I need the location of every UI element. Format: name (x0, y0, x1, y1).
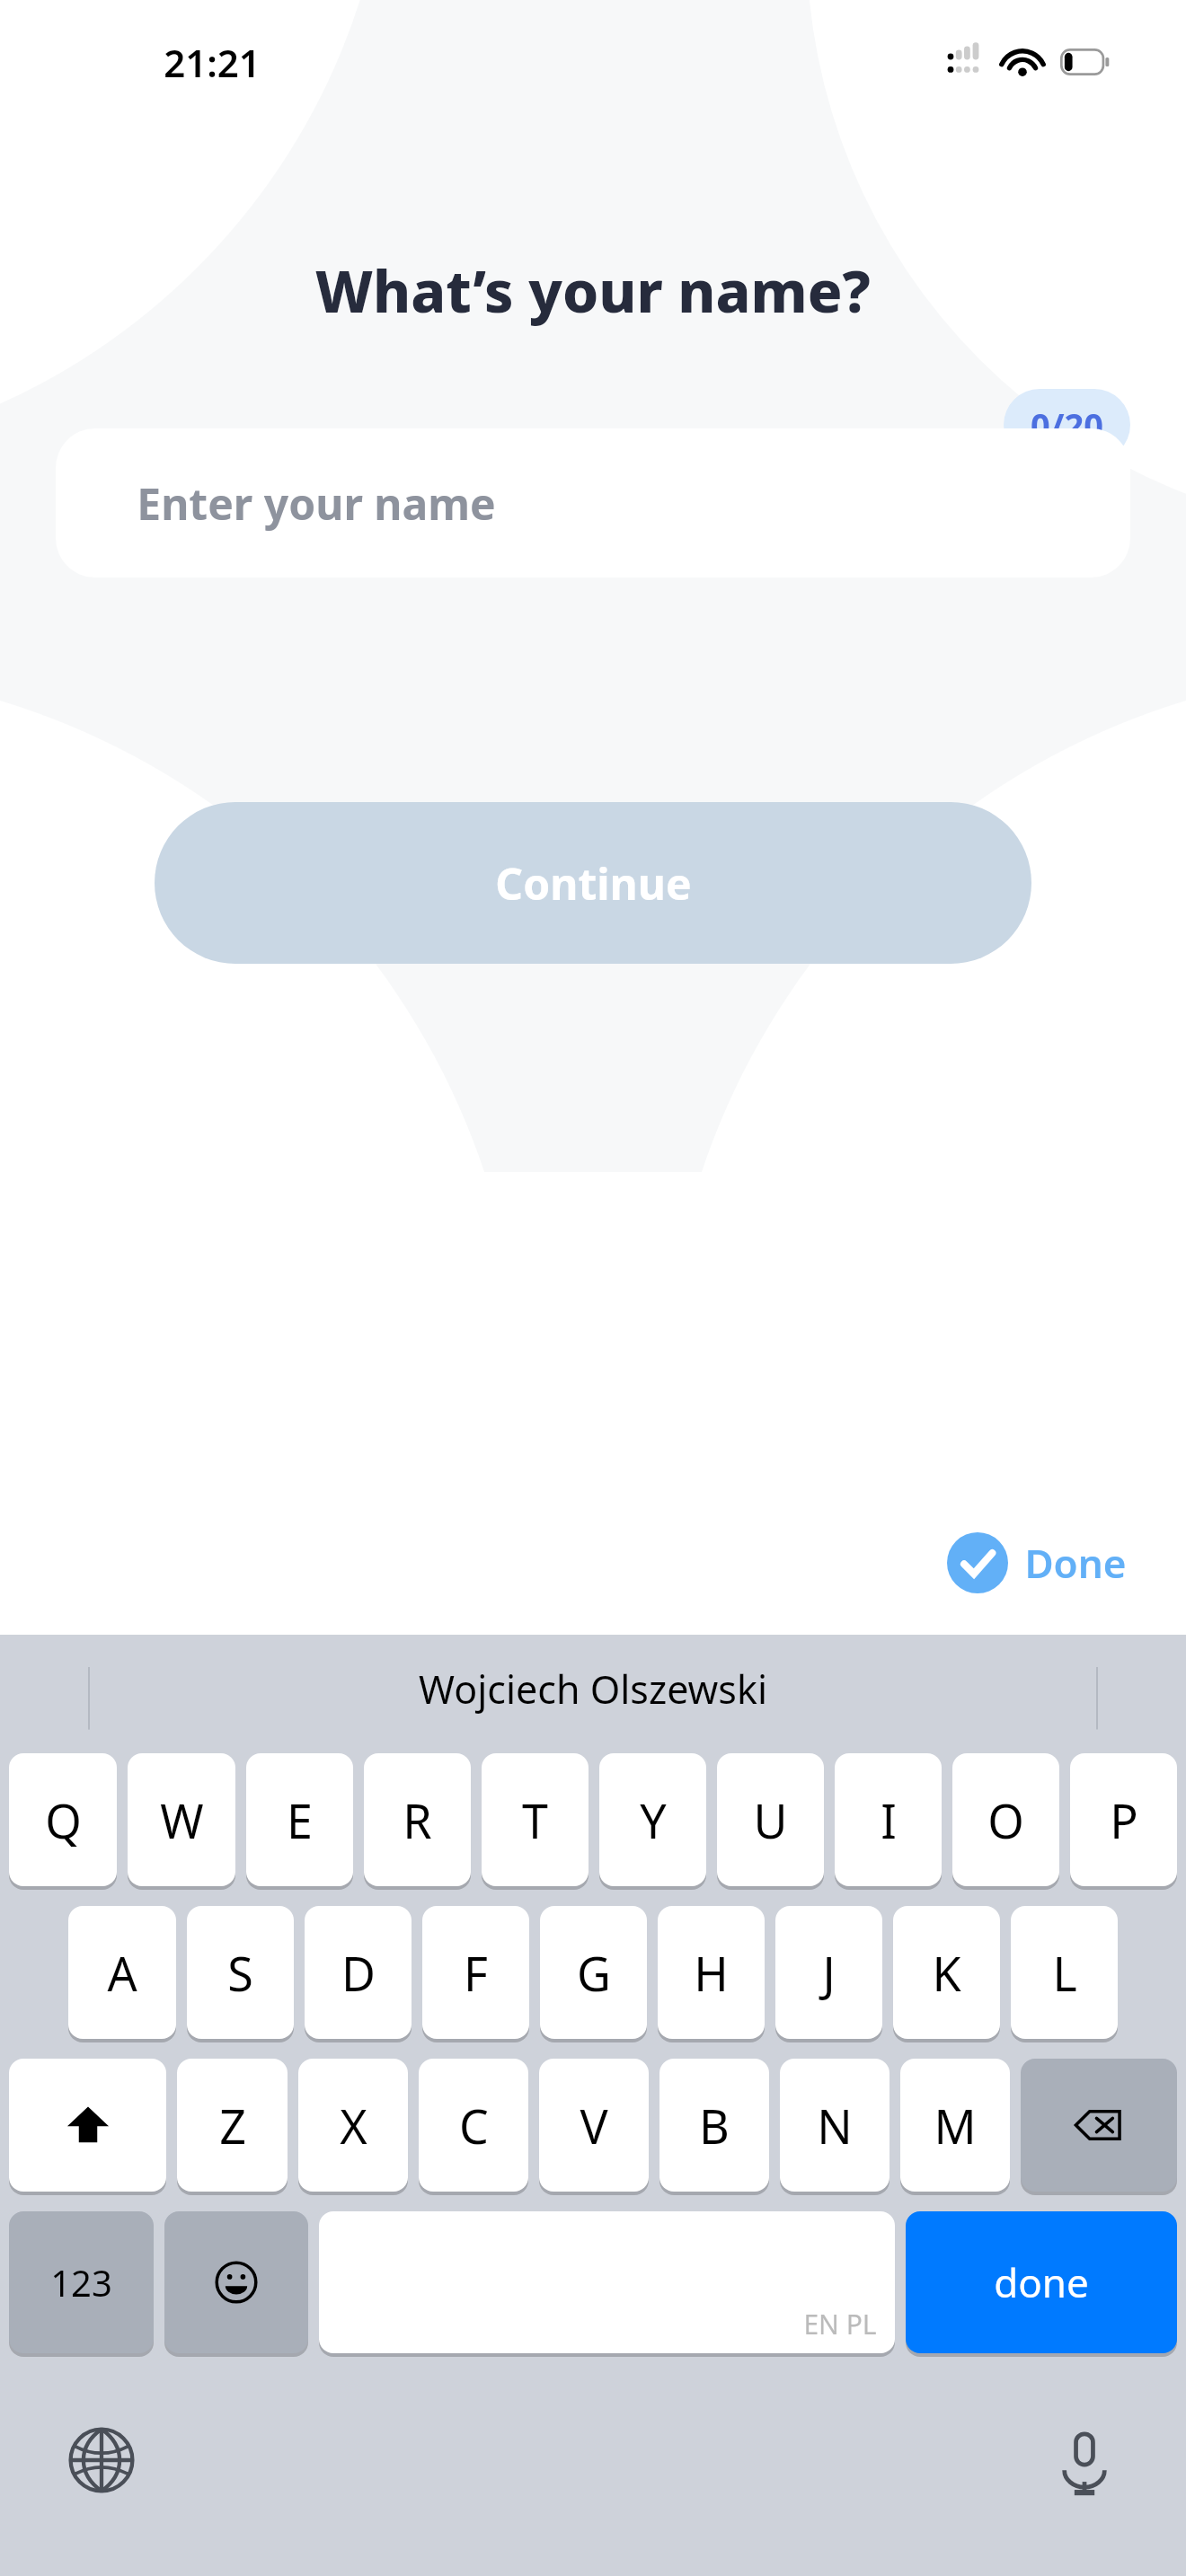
button[interactable]: F (422, 1906, 529, 2039)
staticText: J (822, 1941, 836, 2005)
staticText: Done (1024, 1536, 1127, 1590)
button[interactable]: O (952, 1753, 1059, 1886)
staticText: D (341, 1941, 376, 2005)
staticText: Enter your name (137, 474, 496, 533)
staticText: P (1110, 1788, 1138, 1852)
button[interactable]: W (128, 1753, 235, 1886)
button[interactable]: Z (177, 2059, 288, 2192)
button[interactable]: L (1011, 1906, 1118, 2039)
button[interactable]: V (539, 2059, 649, 2192)
button[interactable]: Change keyboard language (63, 2422, 140, 2499)
staticText: T (522, 1788, 548, 1852)
staticText: O (987, 1788, 1024, 1852)
button[interactable]: Done (940, 1527, 1134, 1599)
staticText: L (1052, 1941, 1077, 2005)
button[interactable]: 123 (9, 2211, 154, 2353)
button[interactable]: Emoji (164, 2211, 308, 2353)
button[interactable]: N (780, 2059, 889, 2192)
button[interactable]: J (775, 1906, 882, 2039)
other: Done (947, 1532, 1008, 1593)
button[interactable]: U (717, 1753, 824, 1886)
staticText: What’s your name? (315, 251, 871, 330)
staticText: S (227, 1941, 253, 2005)
staticText: Z (219, 2094, 246, 2157)
button[interactable]: X (298, 2059, 408, 2192)
button[interactable]: T (482, 1753, 589, 1886)
staticText: A (107, 1941, 137, 2005)
button[interactable]: K (893, 1906, 1000, 2039)
staticText: V (580, 2094, 608, 2157)
staticText: done (994, 2255, 1089, 2309)
button[interactable]: S (187, 1906, 294, 2039)
staticText: 0/20 (1031, 401, 1103, 448)
button[interactable]: G (540, 1906, 647, 2039)
button[interactable]: P (1070, 1753, 1177, 1886)
staticText: X (340, 2094, 367, 2157)
button[interactable]: H (658, 1906, 765, 2039)
staticText: C (459, 2094, 489, 2157)
staticText: 21:21 (164, 37, 261, 88)
staticText: 123 (50, 2258, 112, 2307)
button[interactable]: Enter your name (56, 428, 1130, 578)
button[interactable]: Q (9, 1753, 117, 1886)
staticText: N (817, 2094, 853, 2157)
staticText: G (577, 1941, 611, 2005)
staticText: I (881, 1788, 897, 1852)
button[interactable]: C (419, 2059, 528, 2192)
staticText: Wojciech Olszewski (419, 1663, 767, 1716)
staticText: U (753, 1788, 788, 1852)
button[interactable]: E (246, 1753, 353, 1886)
button[interactable]: Wojciech Olszewski (383, 1654, 803, 1725)
button[interactable]: Y (599, 1753, 706, 1886)
staticText: R (403, 1788, 432, 1852)
staticText: H (694, 1941, 729, 2005)
button[interactable]: A (68, 1906, 176, 2039)
staticText: Y (640, 1788, 667, 1852)
button[interactable]: Continue (155, 802, 1031, 964)
button[interactable]: R (364, 1753, 471, 1886)
button[interactable]: Shift (9, 2059, 166, 2192)
staticText: K (932, 1941, 961, 2005)
staticText: Continue (495, 854, 692, 913)
staticText: Q (45, 1788, 82, 1852)
staticText: F (464, 1941, 488, 2005)
button[interactable]: D (305, 1906, 412, 2039)
staticText: EN PL (803, 2306, 877, 2342)
button[interactable]: Space (319, 2211, 895, 2353)
button[interactable]: done (906, 2211, 1177, 2353)
staticText: B (699, 2094, 730, 2157)
button[interactable]: Voice input (1046, 2422, 1123, 2499)
button[interactable]: B (659, 2059, 769, 2192)
staticText: W (160, 1788, 204, 1852)
button[interactable]: Backspace (1021, 2059, 1177, 2192)
button[interactable]: 0/20 (1004, 389, 1130, 461)
staticText: M (934, 2094, 977, 2157)
button[interactable]: M (900, 2059, 1010, 2192)
button[interactable]: I (835, 1753, 942, 1886)
staticText: E (287, 1788, 313, 1852)
